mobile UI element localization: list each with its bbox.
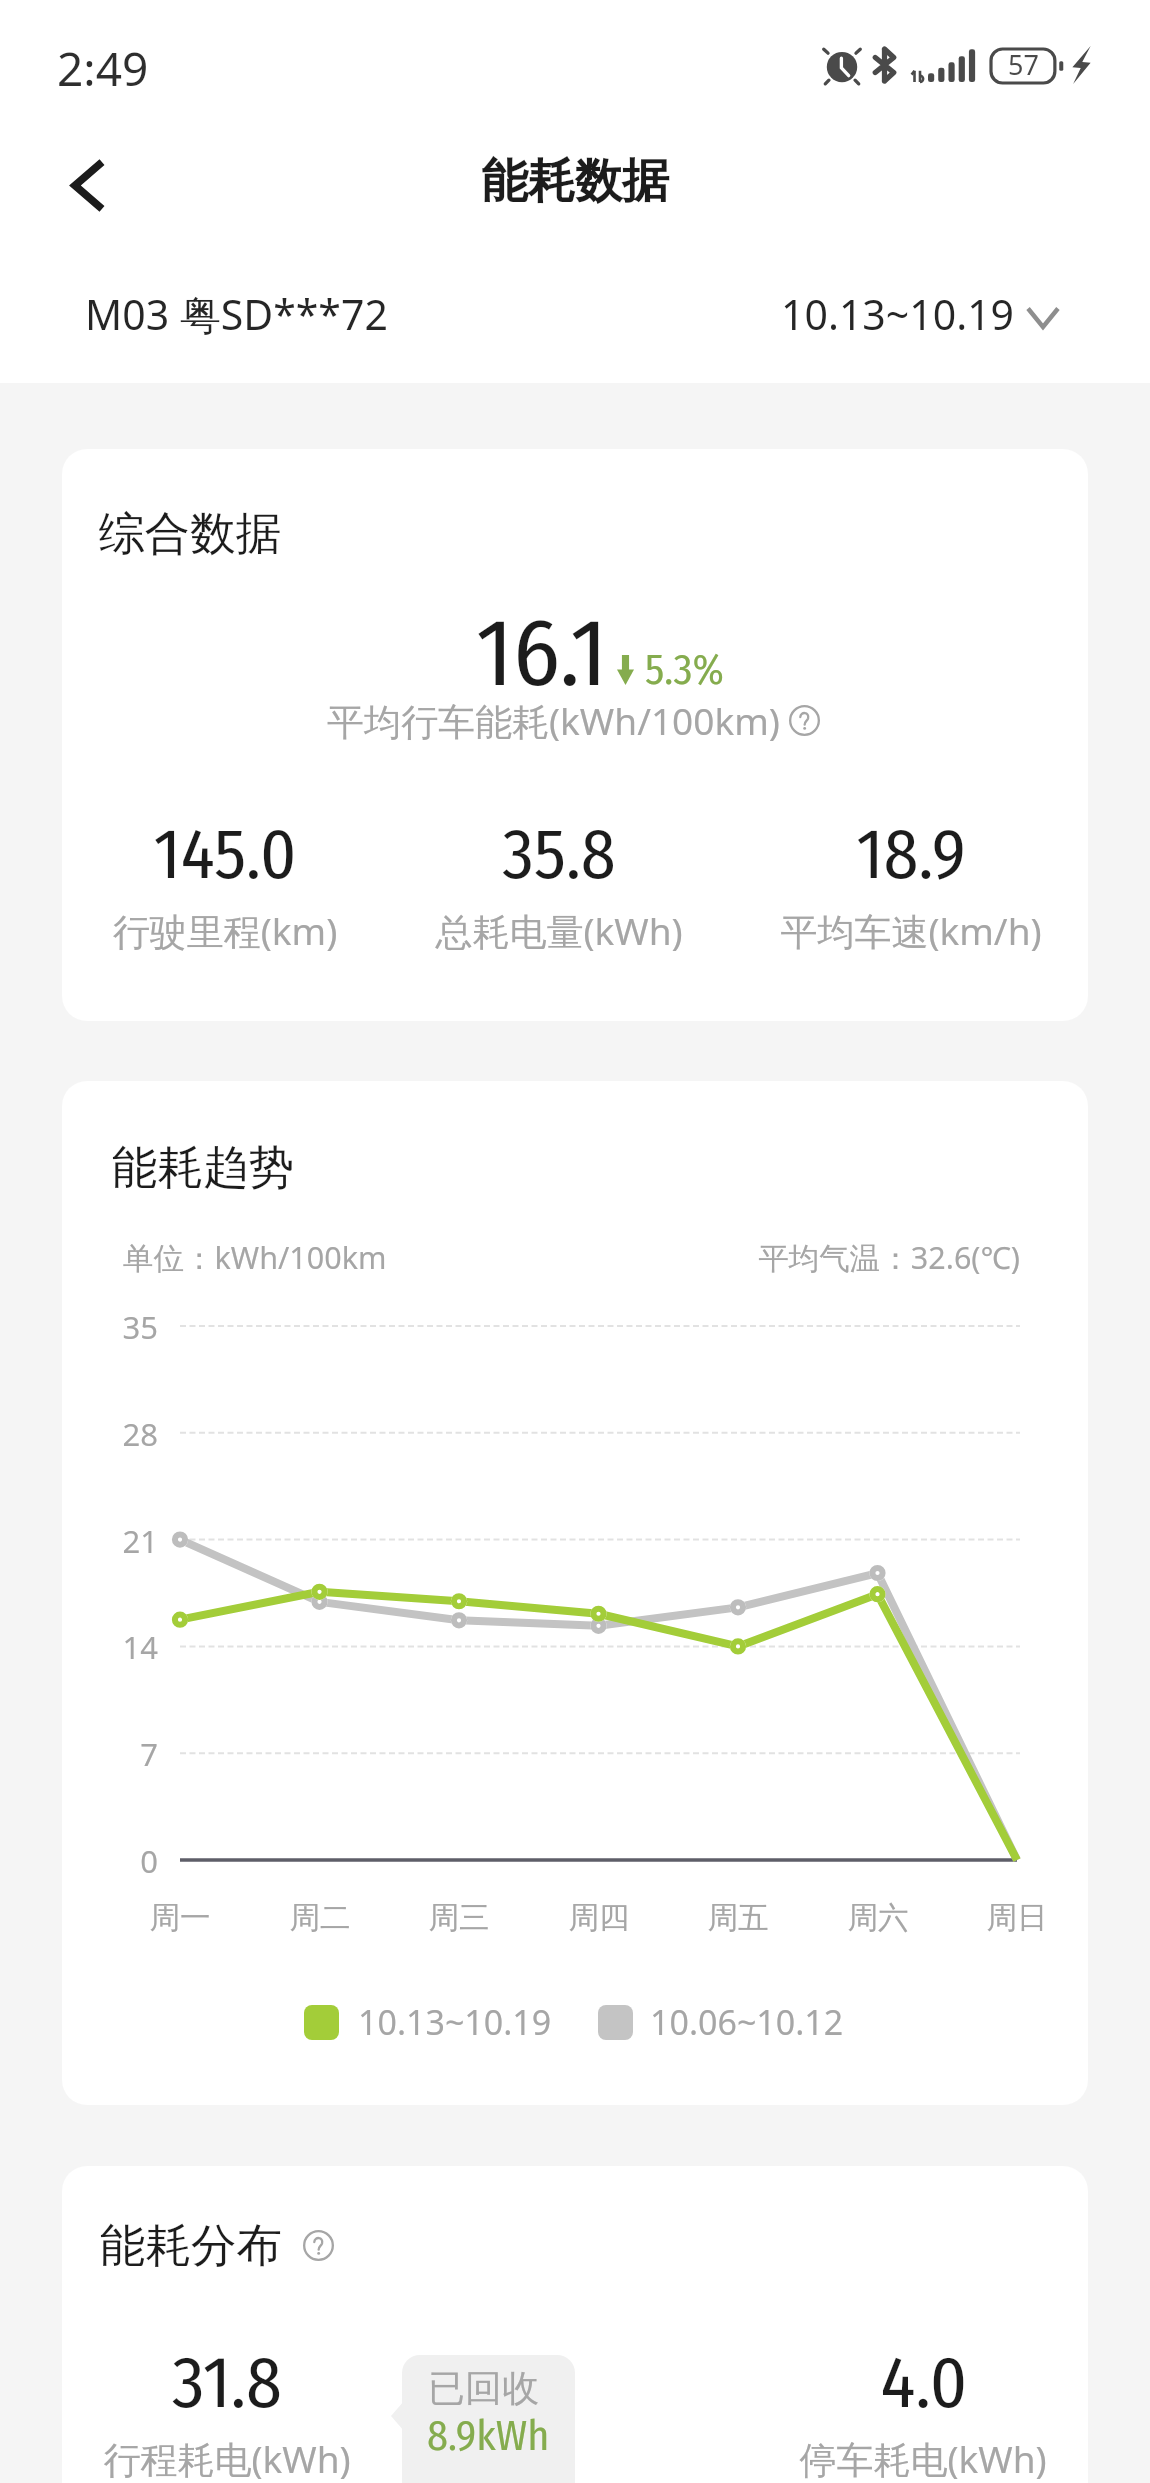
staticText: 57 [1008, 46, 1039, 83]
staticText: 2:49 [57, 37, 149, 100]
staticText: 综合数据 [99, 505, 281, 562]
staticText: 平均车速(km/h) [601, 905, 1088, 956]
staticText: 10.06~10.12 [650, 1999, 844, 2045]
staticText: 能耗趋势 [112, 1139, 294, 1196]
staticText: 周五 [428, 1899, 1048, 1937]
staticText: 能耗分布 [100, 2217, 282, 2274]
staticText: 18.9 [601, 813, 1088, 897]
staticText: 21 [62, 1520, 158, 1562]
button[interactable]: Help about average driving consumption [789, 705, 820, 736]
staticText: 总耗电量(kWh) [249, 905, 869, 956]
staticText: 145.0 [62, 813, 535, 897]
staticText: 周二 [62, 1899, 630, 1937]
button[interactable]: Help about consumption breakdown [303, 2230, 334, 2261]
staticText: 周六 [568, 1899, 1088, 1937]
staticText: 周三 [149, 1899, 769, 1937]
staticText: M03 粤SD***72 [85, 286, 388, 342]
staticText: 31.8 [62, 2340, 537, 2426]
staticText: 10.13~10.19 [358, 1999, 552, 2045]
staticText: 10.13~10.19 [781, 286, 1015, 342]
staticText: 单位：kWh/100km [123, 1236, 387, 1278]
button[interactable]: Back [47, 145, 127, 225]
staticText: 行程耗电(kWh) [62, 2433, 537, 2483]
staticText: 16.1 [476, 596, 608, 710]
staticText: 平均气温：32.6(℃) [622, 1236, 1020, 1278]
button[interactable]: 10.13~10.19 [781, 286, 1060, 342]
staticText: 已回收 [428, 2365, 539, 2412]
staticText: 35.8 [249, 813, 869, 897]
staticText: 周日 [707, 1899, 1088, 1937]
staticText: 7 [62, 1733, 158, 1775]
staticText: 周四 [289, 1899, 909, 1937]
staticText: 平均行车能耗(kWh/100km) [327, 695, 780, 746]
staticText: 4.0 [614, 2340, 1088, 2426]
staticText: 能耗数据 [265, 152, 885, 211]
staticText: 35 [62, 1306, 158, 1348]
staticText: 行驶里程(km) [62, 905, 535, 956]
staticText: 14 [62, 1626, 158, 1668]
staticText: 停车耗电(kWh) [613, 2433, 1088, 2483]
staticText: 8.9kWh [427, 2411, 550, 2461]
staticText: 5.3% [645, 645, 724, 695]
staticText: 28 [62, 1413, 158, 1455]
staticText: 周一 [62, 1899, 490, 1937]
staticText: 0 [62, 1840, 158, 1882]
